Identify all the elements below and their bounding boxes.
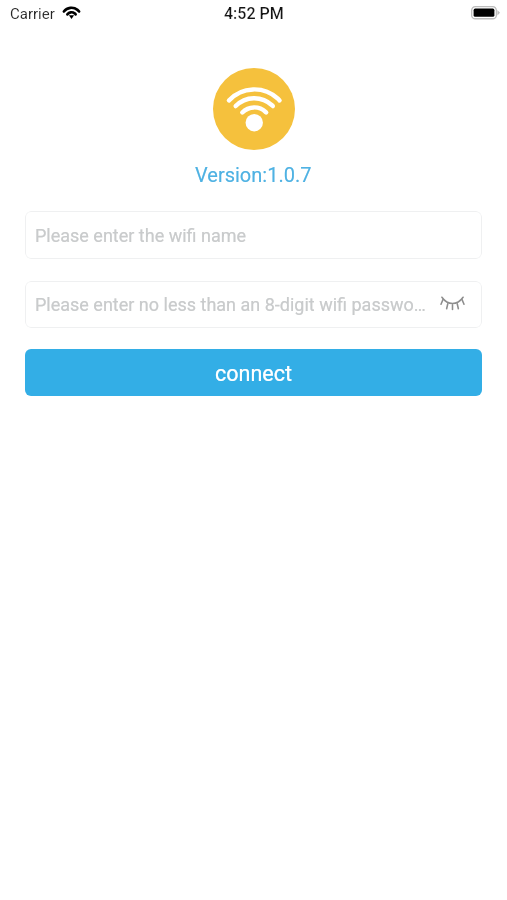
staticText: Please enter no less than an 8-digit wif… xyxy=(35,294,426,315)
staticText: Version:1.0.7 xyxy=(195,163,312,186)
staticText: connect xyxy=(215,361,292,386)
button[interactable]: Please enter the wifi name xyxy=(25,211,482,259)
staticText: Please enter the wifi name xyxy=(35,225,247,246)
staticText: 4:52 PM xyxy=(224,4,284,23)
button[interactable]: Show password xyxy=(426,281,482,328)
button[interactable]: connect xyxy=(25,349,482,396)
button[interactable]: Please enter no less than an 8-digit wif… xyxy=(25,281,482,328)
staticText: Carrier xyxy=(10,5,55,23)
